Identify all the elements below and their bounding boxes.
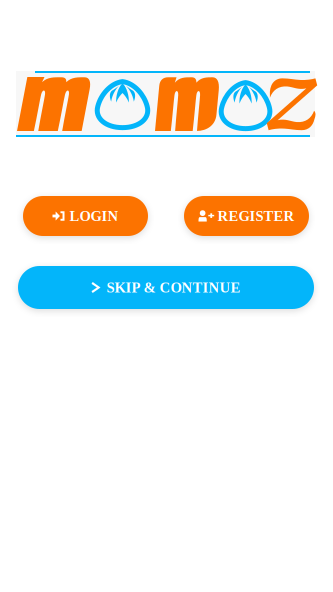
button[interactable]: LOGIN <box>23 196 148 236</box>
staticText: REGISTER <box>217 208 294 224</box>
button[interactable]: REGISTER <box>184 196 309 236</box>
staticText: LOGIN <box>69 208 118 224</box>
button[interactable]: SKIP & CONTINUE <box>18 266 314 309</box>
staticText: SKIP & CONTINUE <box>106 279 240 296</box>
